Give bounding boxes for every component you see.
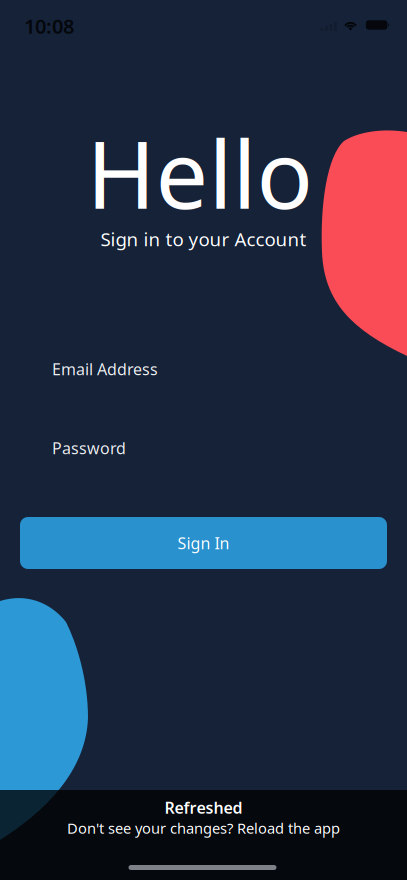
staticText: Refreshed — [164, 797, 242, 818]
button[interactable]: Password — [20, 424, 387, 472]
button[interactable]: Sign In — [20, 517, 387, 569]
staticText: 10:08 — [24, 13, 74, 39]
staticText: Sign In — [177, 532, 229, 554]
staticText: Password — [52, 437, 126, 459]
staticText: Don't see your changes? Reload the app — [67, 818, 340, 838]
staticText: Email Address — [52, 358, 158, 380]
staticText: Hello — [86, 110, 312, 234]
button[interactable]: Email Address — [20, 345, 387, 393]
staticText: Sign in to your Account — [100, 227, 306, 251]
